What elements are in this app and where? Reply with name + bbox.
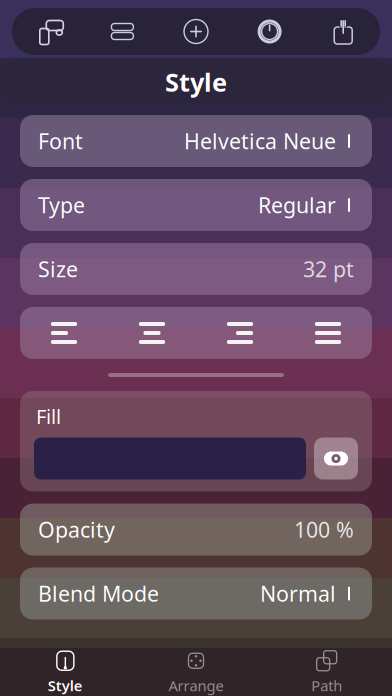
button[interactable]: Style [0, 648, 131, 696]
button[interactable]: Toggle fill visibility [314, 438, 358, 480]
button[interactable]: Opacity [20, 504, 372, 556]
button[interactable]: Justify [284, 307, 372, 359]
button[interactable]: Fill colour [34, 438, 306, 480]
button[interactable]: Size [20, 243, 372, 295]
staticText: 32 pt [303, 255, 354, 283]
button[interactable]: Align right [196, 307, 284, 359]
staticText: Fill [36, 403, 61, 430]
button[interactable]: Path [261, 648, 392, 696]
button[interactable]: Share [306, 15, 380, 47]
staticText: Size [38, 255, 78, 283]
button[interactable]: Align left [20, 307, 108, 359]
staticText: Path [311, 676, 342, 695]
button[interactable]: Type [20, 179, 372, 231]
staticText: Style [165, 65, 227, 99]
staticText: Helvetica Neue [184, 127, 336, 155]
staticText: Type [38, 191, 85, 219]
staticText: Regular [258, 191, 336, 219]
staticText: Blend Mode [38, 579, 159, 608]
staticText: 100 % [294, 515, 354, 544]
button[interactable]: Font [20, 115, 372, 167]
staticText: Style [48, 676, 83, 695]
staticText: Font [38, 127, 83, 155]
button[interactable]: Settings [233, 17, 306, 45]
staticText: Arrange [168, 676, 223, 695]
staticText: Normal [260, 579, 336, 608]
button[interactable]: Arrange [131, 648, 261, 696]
button[interactable]: Add [159, 16, 233, 46]
button[interactable]: Style tools [12, 16, 86, 46]
staticText: Opacity [38, 515, 115, 544]
button[interactable]: Align center [108, 307, 196, 359]
button[interactable]: Layers [86, 18, 159, 44]
button[interactable]: Blend Mode [20, 568, 372, 620]
